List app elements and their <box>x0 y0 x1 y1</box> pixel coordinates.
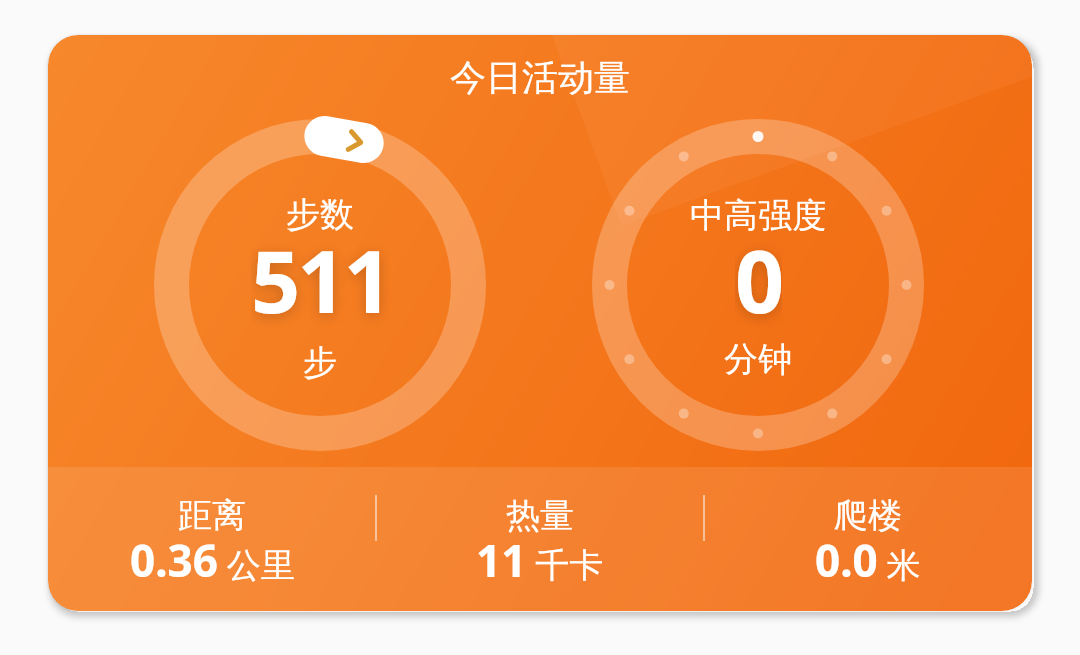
button[interactable] <box>376 480 704 611</box>
staticText: 步数 <box>286 193 354 236</box>
staticText: 热量 <box>506 494 574 537</box>
staticText: 511 <box>251 221 390 331</box>
staticText: 爬楼 <box>834 494 902 537</box>
staticText: 分钟 <box>724 338 792 381</box>
staticText: 0.0 米 <box>815 530 921 590</box>
staticText: 步 <box>303 341 337 384</box>
button[interactable] <box>704 480 1032 611</box>
staticText: 0.36 公里 <box>130 530 295 590</box>
staticText: 11 千卡 <box>476 530 604 590</box>
button[interactable] <box>48 480 376 611</box>
staticText: 今日活动量 <box>450 55 630 100</box>
button[interactable]: 今日活动量 <box>48 35 1032 611</box>
staticText: 距离 <box>178 494 246 537</box>
staticText: 中高强度 <box>690 194 826 237</box>
staticText: 0 <box>735 221 782 331</box>
